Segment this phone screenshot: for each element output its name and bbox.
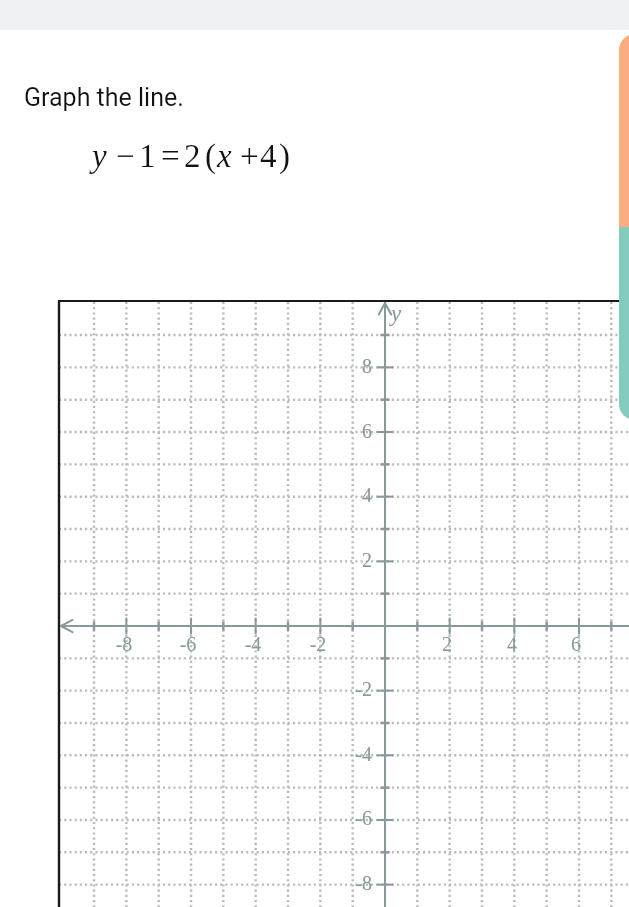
staticText: -4 — [312, 743, 372, 765]
staticText: 4 — [312, 484, 372, 506]
staticText: -2 — [312, 678, 372, 700]
staticText: 6 — [546, 633, 606, 655]
staticText: + — [240, 138, 259, 175]
staticText: -2 — [288, 633, 348, 655]
staticText: ) — [279, 138, 290, 175]
staticText: 2 — [417, 633, 477, 655]
staticText: 2 — [312, 549, 372, 571]
staticText: Graph the line. — [24, 83, 184, 112]
button[interactable]: Orange tool tab — [619, 34, 629, 227]
staticText: x — [217, 138, 232, 175]
staticText: = — [161, 138, 180, 175]
staticText: -6 — [158, 633, 218, 655]
staticText: 1 — [139, 138, 156, 175]
staticText: -6 — [312, 807, 372, 829]
staticText: 8 — [312, 355, 372, 377]
staticText: 4 — [260, 138, 277, 175]
staticText: y — [391, 301, 402, 326]
staticText: y — [92, 138, 107, 175]
staticText: 4 — [482, 633, 542, 655]
button[interactable]: Teal tool tab — [619, 227, 629, 420]
staticText: ( — [205, 138, 216, 175]
staticText: -8 — [312, 872, 372, 894]
staticText: -4 — [223, 633, 283, 655]
staticText: 6 — [312, 420, 372, 442]
staticText: -8 — [94, 633, 154, 655]
staticText: 2 — [184, 138, 201, 175]
staticText: − — [116, 138, 135, 175]
